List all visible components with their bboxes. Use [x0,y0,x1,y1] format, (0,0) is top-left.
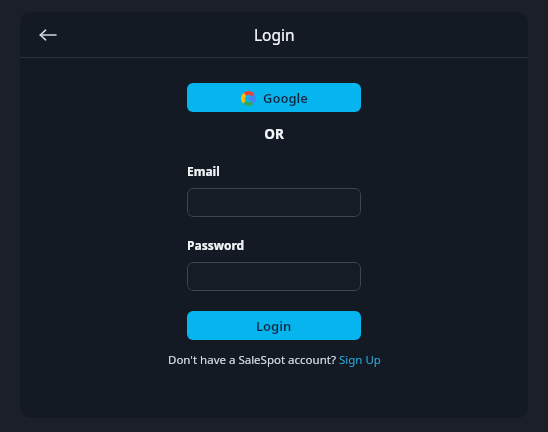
staticText: Login [254,24,295,45]
button[interactable]: Sign Up [339,352,381,368]
button[interactable] [187,262,361,291]
button[interactable]: Back [30,17,66,53]
staticText: Don't have a SaleSpot account? [168,352,339,368]
staticText: OR [187,125,361,143]
button[interactable]: Google [187,83,361,112]
staticText: Sign Up [339,352,381,368]
staticText: Login [256,317,292,335]
button[interactable] [187,188,361,217]
staticText: Google [263,89,308,107]
staticText: Email [187,163,220,179]
staticText: Password [187,237,245,253]
button[interactable]: Login [187,311,361,340]
